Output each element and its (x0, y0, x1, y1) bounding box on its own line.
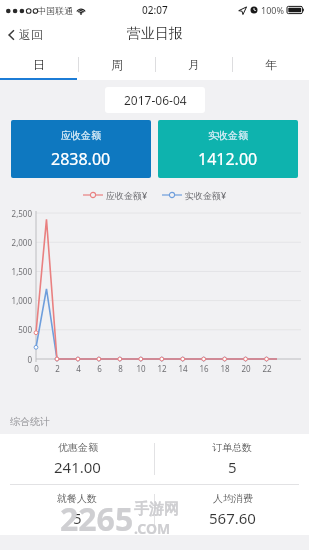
button[interactable]: 返回 (0, 23, 53, 46)
staticText: 5 (228, 457, 237, 477)
staticText: 0 (34, 363, 39, 374)
staticText: 综合统计 (10, 415, 50, 428)
staticText: 6 (97, 363, 102, 374)
staticText: 就餐人数 (57, 492, 97, 505)
staticText: 1,000 (11, 295, 32, 306)
staticText: 中国联通 (37, 5, 73, 16)
button[interactable]: 优惠金额 (0, 434, 154, 484)
staticText: 567.60 (209, 508, 256, 528)
staticText: 02:07 (142, 3, 168, 17)
staticText: 4 (76, 363, 81, 374)
staticText: 2,500 (11, 208, 32, 219)
staticText: 优惠金额 (58, 441, 98, 454)
staticText: 20 (241, 363, 251, 374)
button[interactable]: 年 (232, 48, 309, 80)
staticText: 500 (18, 324, 32, 335)
button[interactable]: 应收金额 (11, 120, 151, 178)
button[interactable]: 周 (78, 48, 155, 80)
button[interactable]: 就餐人数 (0, 485, 154, 535)
staticText: 应收金额¥ (106, 189, 148, 201)
staticText: 周 (111, 57, 123, 72)
staticText: .COM (134, 519, 171, 538)
button[interactable]: 实收金额 (158, 120, 298, 178)
button[interactable]: 人均消费 (155, 485, 309, 535)
staticText: 月 (188, 57, 200, 72)
staticText: 12 (157, 363, 167, 374)
staticText: 实收金额 (208, 129, 248, 142)
staticText: 2838.00 (51, 148, 111, 170)
staticText: 22 (262, 363, 272, 374)
staticText: 年 (265, 57, 277, 72)
staticText: 手游网 (134, 500, 179, 519)
staticText: 14 (178, 363, 188, 374)
staticText: 18 (220, 363, 230, 374)
staticText: 2,000 (11, 237, 32, 248)
staticText: 返回 (19, 27, 43, 42)
staticText: 8 (118, 363, 123, 374)
button[interactable]: 日 (0, 48, 78, 80)
staticText: 订单总数 (212, 441, 252, 454)
staticText: 人均消费 (213, 492, 253, 505)
staticText: 实收金额¥ (185, 189, 227, 201)
staticText: 1,500 (11, 266, 32, 277)
staticText: 16 (199, 363, 209, 374)
staticText: 2017-06-04 (124, 92, 187, 108)
staticText: 10 (136, 363, 146, 374)
staticText: 0 (27, 354, 32, 365)
staticText: 5 (73, 508, 82, 528)
button[interactable]: 2017-06-04 (105, 87, 205, 113)
staticText: 1412.00 (198, 148, 258, 170)
staticText: 营业日报 (127, 25, 183, 43)
button[interactable]: 月 (155, 48, 232, 80)
staticText: 100% (261, 4, 284, 16)
staticText: 日 (33, 57, 45, 72)
staticText: 2 (55, 363, 60, 374)
staticText: 2265 (60, 497, 134, 541)
staticText: 241.00 (54, 457, 101, 477)
button[interactable]: 订单总数 (155, 434, 309, 484)
staticText: 应收金额 (61, 129, 101, 142)
